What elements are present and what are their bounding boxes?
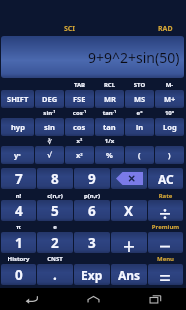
staticText: FSE: [73, 94, 86, 104]
staticText: Rate: [148, 192, 183, 200]
button[interactable]: 0: [1, 264, 36, 285]
staticText: (: [138, 150, 141, 160]
button[interactable]: 2: [37, 232, 73, 253]
button[interactable]: Back: [0, 288, 62, 310]
button[interactable]: tan: [95, 118, 124, 136]
button[interactable]: 4: [1, 200, 36, 221]
button[interactable]: 9: [74, 168, 110, 189]
button[interactable]: Ans: [111, 264, 147, 285]
staticText: yx: [14, 150, 21, 160]
staticText: sin: [44, 122, 55, 132]
button[interactable]: 7: [1, 168, 36, 189]
staticText: ÷: [159, 200, 172, 221]
staticText: cos: [73, 122, 86, 132]
staticText: 4: [15, 202, 23, 220]
staticText: tan: [103, 122, 116, 132]
staticText: x2: [76, 150, 83, 160]
button[interactable]: √: [35, 146, 64, 164]
staticText: History: [1, 255, 36, 263]
staticText: Ans: [118, 267, 141, 283]
staticText: c(n,r): [37, 192, 73, 200]
staticText: p(n,r): [74, 192, 110, 200]
staticText: 10x: [155, 109, 184, 117]
staticText: e: [37, 223, 73, 231]
staticText: +: [123, 232, 136, 253]
staticText: TAB: [65, 81, 94, 89]
staticText: MR: [104, 94, 116, 104]
button[interactable]: Home: [62, 288, 124, 310]
button[interactable]: %: [95, 146, 124, 164]
button[interactable]: 1: [1, 232, 36, 253]
staticText: 7: [15, 170, 23, 188]
staticText: n!: [1, 192, 36, 200]
staticText: CNST: [37, 255, 73, 263]
button[interactable]: 8: [37, 168, 73, 189]
staticText: M+: [164, 94, 176, 104]
staticText: .: [53, 266, 57, 284]
staticText: M-: [155, 81, 184, 89]
staticText: 2: [51, 234, 59, 252]
button[interactable]: Log: [155, 118, 184, 136]
staticText: SCI: [64, 24, 76, 34]
button[interactable]: +: [111, 232, 147, 253]
button[interactable]: ): [155, 146, 184, 164]
staticText: 0: [15, 266, 23, 284]
button[interactable]: (: [125, 146, 154, 164]
staticText: 6: [88, 202, 96, 220]
button[interactable]: −: [148, 232, 183, 253]
button[interactable]: SHIFT: [1, 90, 34, 108]
button[interactable]: sin: [35, 118, 64, 136]
button[interactable]: x2: [65, 146, 94, 164]
button[interactable]: FSE: [65, 90, 94, 108]
staticText: 9: [88, 170, 96, 188]
staticText: %: [106, 150, 113, 160]
button[interactable]: 3: [74, 232, 110, 253]
staticText: π: [1, 223, 36, 231]
button[interactable]: ÷: [148, 200, 183, 221]
button[interactable]: ln: [125, 118, 154, 136]
staticText: X: [124, 202, 134, 220]
button[interactable]: yx: [1, 146, 34, 164]
staticText: Exp: [81, 267, 103, 283]
staticText: DEG: [42, 94, 58, 104]
staticText: 1/x: [95, 137, 124, 145]
button[interactable]: MS: [125, 90, 154, 108]
staticText: MS: [134, 94, 146, 104]
staticText: −: [159, 232, 172, 253]
button[interactable]: DEG: [35, 90, 64, 108]
staticText: Menu: [148, 255, 183, 263]
button[interactable]: AC: [148, 168, 183, 189]
staticText: STO: [125, 81, 154, 89]
staticText: AC: [158, 171, 174, 187]
staticText: sin-1: [35, 109, 64, 117]
staticText: ): [168, 150, 171, 160]
staticText: √: [47, 151, 53, 160]
button[interactable]: X: [111, 200, 147, 221]
staticText: cos-1: [65, 109, 94, 117]
staticText: 9+9^2+sin(50): [88, 48, 180, 67]
button[interactable]: hyp: [1, 118, 34, 136]
staticText: 8: [51, 170, 59, 188]
button[interactable]: Recents: [124, 288, 186, 310]
staticText: =: [159, 264, 172, 285]
staticText: 3: [88, 234, 96, 252]
button[interactable]: M+: [155, 90, 184, 108]
button[interactable]: .: [37, 264, 73, 285]
staticText: x3: [65, 137, 94, 145]
button[interactable]: MR: [95, 90, 124, 108]
button[interactable]: 5: [37, 200, 73, 221]
button[interactable]: Backspace: [111, 168, 147, 189]
button[interactable]: Exp: [74, 264, 110, 285]
button[interactable]: =: [148, 264, 183, 285]
button[interactable]: 6: [74, 200, 110, 221]
staticText: 5: [51, 202, 59, 220]
button[interactable]: 9+9^2+sin(50): [1, 36, 184, 78]
staticText: SHIFT: [7, 94, 29, 104]
staticText: ∛: [35, 138, 64, 145]
staticText: RCL: [95, 81, 124, 89]
button[interactable]: cos: [65, 118, 94, 136]
staticText: hyp: [11, 122, 25, 132]
staticText: tan-1: [95, 109, 124, 117]
staticText: Premium: [148, 223, 183, 231]
staticText: Log: [163, 122, 177, 132]
